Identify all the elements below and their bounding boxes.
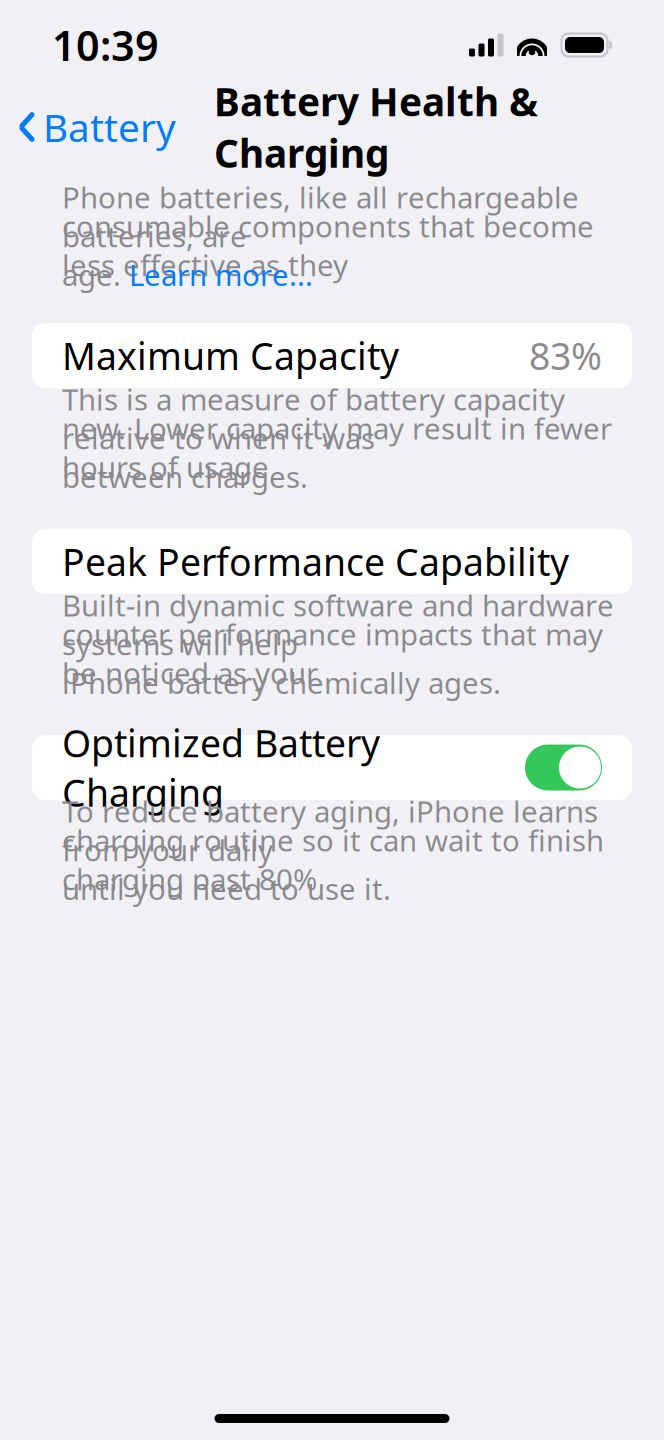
staticText: Phone batteries, like all rechargeable b… xyxy=(62,177,579,255)
staticText: Battery Health & Charging xyxy=(214,76,538,178)
button[interactable]: Optimized Battery Charging xyxy=(0,735,664,800)
button[interactable]: Maximum Capacity xyxy=(0,323,664,388)
staticText: new. Lower capacity may result in fewer … xyxy=(62,408,612,486)
staticText: To reduce battery aging, iPhone learns f… xyxy=(62,791,598,869)
staticText: Built-in dynamic software and hardware s… xyxy=(62,585,614,663)
button[interactable]: Peak Performance Capability xyxy=(0,529,664,594)
staticText: between charges. xyxy=(62,457,308,496)
staticText: This is a measure of battery capacity re… xyxy=(62,379,565,457)
staticText: Maximum Capacity xyxy=(62,331,399,380)
staticText: charging routine so it can wait to finis… xyxy=(62,820,604,898)
staticText: Battery xyxy=(43,101,176,153)
staticText: Learn more... xyxy=(129,255,313,294)
staticText: 10:39 xyxy=(52,18,159,72)
staticText: Optimized Battery Charging xyxy=(62,718,380,817)
staticText: consumable components that become less e… xyxy=(62,206,594,284)
staticText: age. xyxy=(62,255,129,294)
staticText: Peak Performance Capability xyxy=(62,537,569,586)
staticText: until you need to use it. xyxy=(62,869,391,908)
button[interactable]: Learn more... xyxy=(129,255,313,294)
staticText: 83% xyxy=(529,331,602,380)
staticText: counter performance impacts that may be … xyxy=(62,614,603,692)
staticText: iPhone battery chemically ages. xyxy=(62,663,501,702)
button[interactable]: Battery xyxy=(0,93,184,161)
